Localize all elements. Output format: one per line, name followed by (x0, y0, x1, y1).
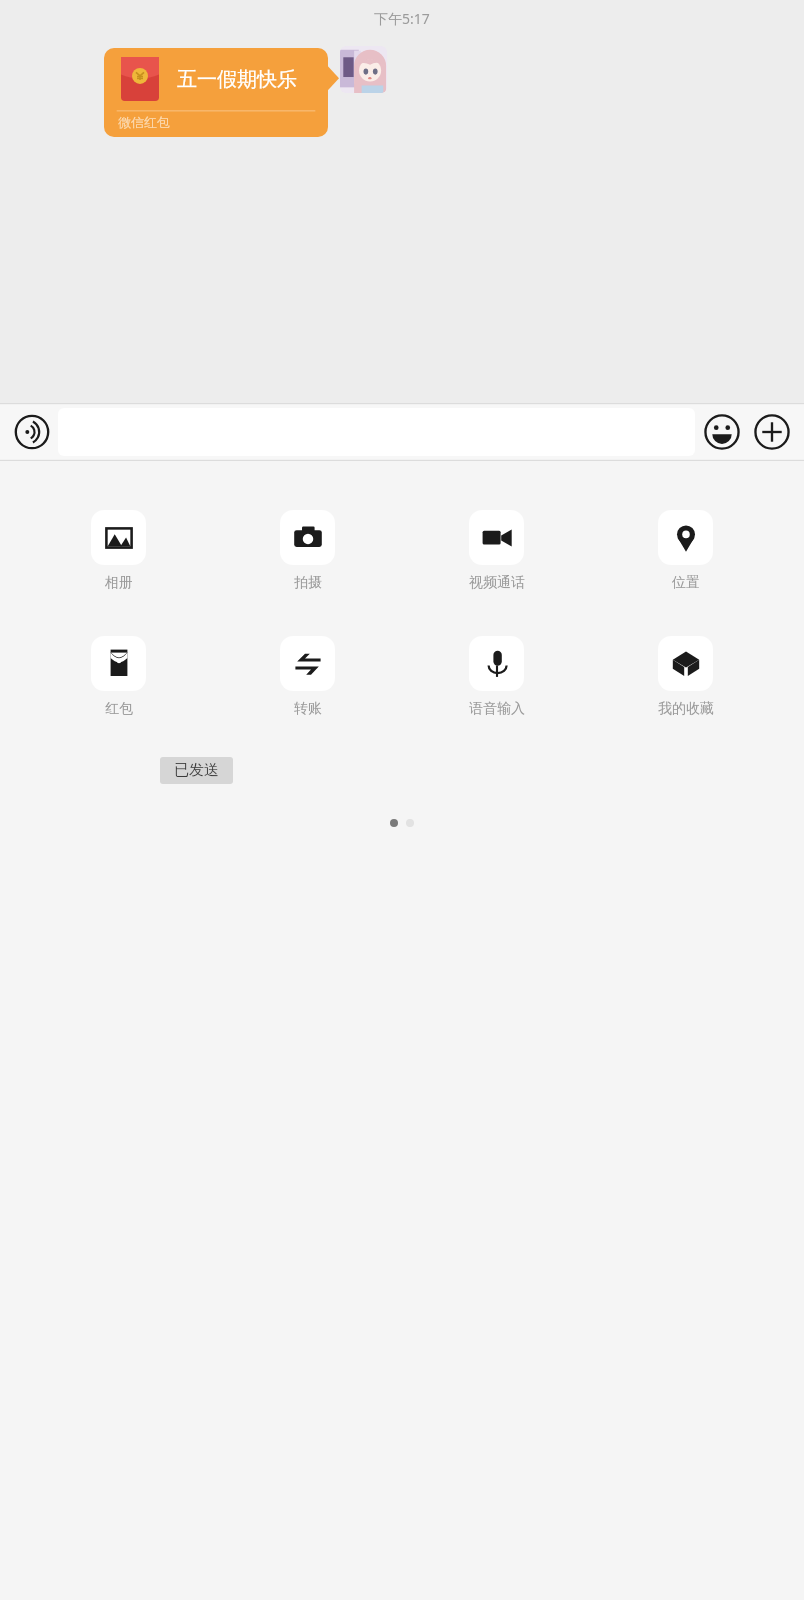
staticText: 位置 (672, 574, 700, 592)
staticText: 视频通话 (469, 574, 525, 592)
staticText: 红包 (105, 700, 133, 718)
staticText: 五一假期快乐 (177, 67, 297, 92)
staticText: 转账 (294, 700, 322, 718)
staticText: 我的收藏 (658, 700, 714, 718)
button[interactable]: 语音输入 (402, 636, 591, 718)
button[interactable]: 相册 (24, 510, 213, 592)
button[interactable]: More (751, 411, 793, 453)
button[interactable]: 拍摄 (213, 510, 402, 592)
staticText: 语音输入 (469, 700, 525, 718)
button[interactable]: Voice input (11, 411, 53, 453)
button[interactable]: 转账 (213, 636, 402, 718)
staticText: 已发送 (174, 761, 219, 780)
button[interactable]: 我的收藏 (591, 636, 780, 718)
button[interactable]: 位置 (591, 510, 780, 592)
staticText: 下午5:17 (374, 9, 430, 28)
staticText: 相册 (105, 574, 133, 592)
staticText: 微信红包 (118, 114, 170, 130)
button[interactable]: 视频通话 (402, 510, 591, 592)
button[interactable]: Emoji (701, 411, 743, 453)
button[interactable]: 红包 (24, 636, 213, 718)
staticText: 拍摄 (294, 574, 322, 592)
button[interactable]: Avatar (340, 46, 387, 93)
